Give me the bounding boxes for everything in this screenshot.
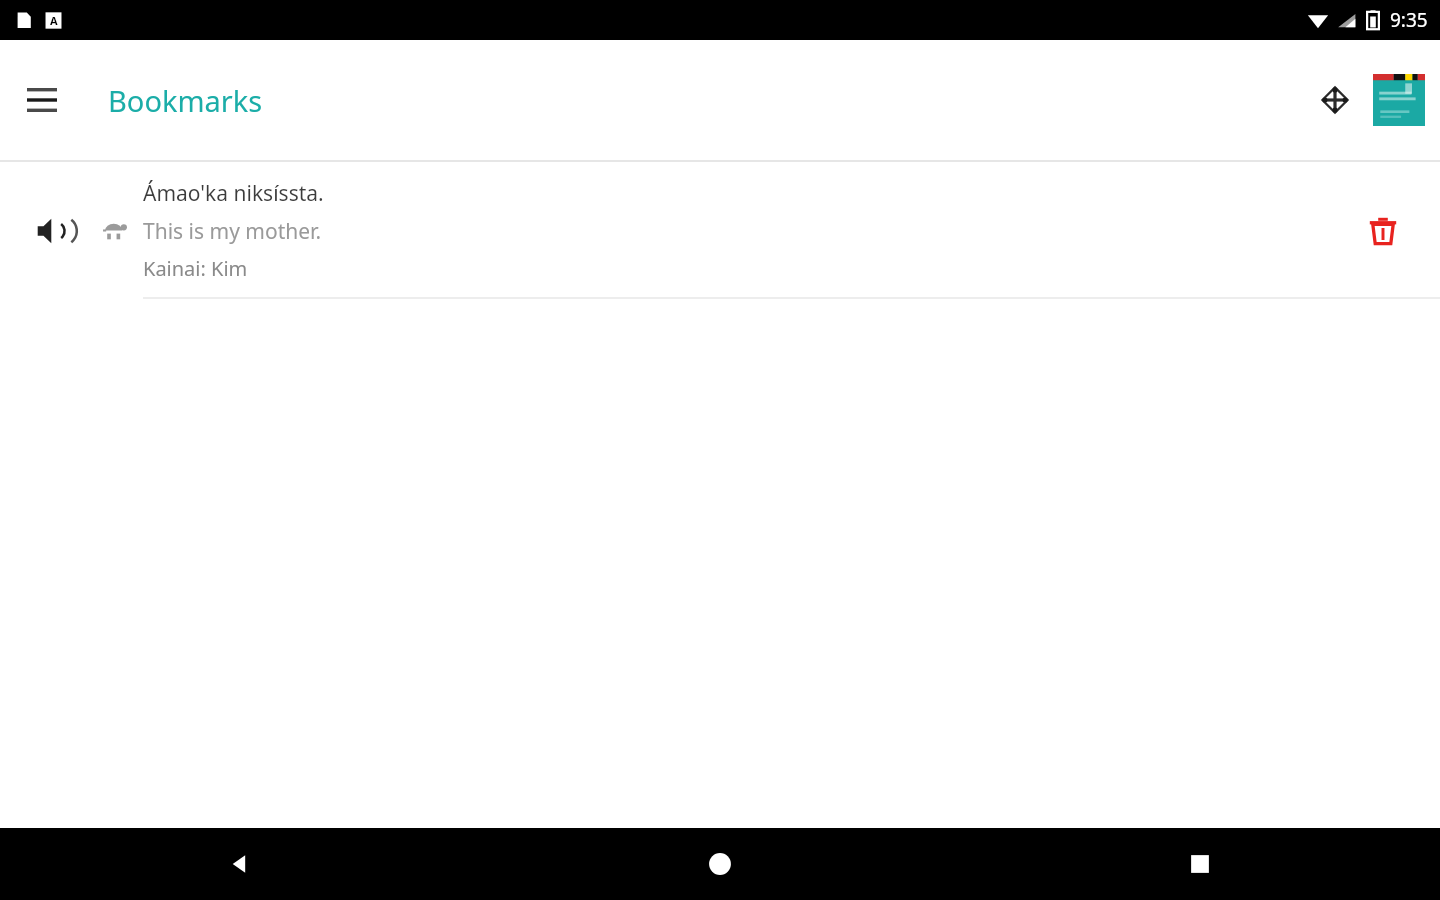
button[interactable]: Play audio [0, 162, 1440, 299]
button[interactable]: Reorder [1308, 73, 1362, 127]
button[interactable]: Open navigation menu [10, 68, 74, 132]
button[interactable]: Back [0, 828, 480, 900]
button[interactable]: Recent apps [960, 828, 1440, 900]
button[interactable]: Play audio [22, 200, 84, 262]
staticText: 9:35 [1390, 7, 1428, 33]
staticText: A [50, 13, 58, 28]
button[interactable]: App logo [1372, 73, 1426, 127]
button[interactable]: Home [480, 828, 960, 900]
staticText: This is my mother. [143, 217, 322, 246]
staticText: Kainai: Kim [143, 255, 248, 282]
staticText: Ámao'ka niksíssta. [143, 179, 324, 208]
staticText: Bookmarks [108, 81, 263, 120]
button[interactable]: Delete bookmark [1356, 204, 1410, 258]
